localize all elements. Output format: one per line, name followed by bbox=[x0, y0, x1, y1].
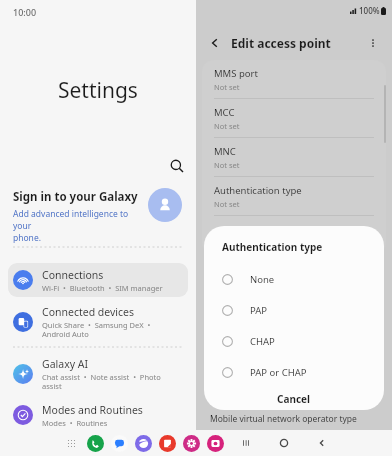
button[interactable]: Galaxy AI bbox=[8, 357, 188, 391]
button[interactable]: Phone bbox=[87, 435, 104, 452]
staticText: Add advanced intelligence to your phone. bbox=[13, 208, 142, 244]
button[interactable]: MCC bbox=[202, 99, 386, 137]
button[interactable]: Cancel bbox=[204, 388, 384, 410]
button[interactable]: Modes and Routines bbox=[8, 398, 188, 432]
staticText: Modes and Routines bbox=[42, 403, 143, 417]
staticText: 10:00 bbox=[13, 6, 37, 18]
staticText: None bbox=[250, 273, 275, 286]
button[interactable]: Sign in to your Galaxy bbox=[0, 185, 196, 244]
staticText: Mobile virtual network operator type bbox=[210, 413, 357, 425]
staticText: MNC bbox=[214, 145, 236, 158]
button[interactable]: None bbox=[204, 264, 384, 295]
staticText: Cancel bbox=[277, 392, 311, 406]
button[interactable]: Store bbox=[183, 435, 200, 452]
button[interactable]: Notes bbox=[159, 435, 176, 452]
staticText: MCC bbox=[214, 106, 235, 119]
staticText: Authentication type bbox=[222, 240, 323, 254]
button[interactable]: PAP or CHAP bbox=[204, 357, 384, 388]
button[interactable]: MMS port bbox=[202, 60, 386, 98]
button[interactable]: Connections bbox=[8, 263, 188, 297]
staticText: CHAP bbox=[250, 335, 275, 348]
button[interactable]: More options bbox=[364, 34, 382, 52]
staticText: Not set bbox=[214, 82, 240, 92]
staticText: 100% bbox=[359, 5, 380, 16]
staticText: Edit access point bbox=[231, 35, 331, 51]
button[interactable]: Messages bbox=[111, 435, 128, 452]
button[interactable]: Apps bbox=[62, 434, 80, 452]
staticText: Galaxy AI bbox=[42, 357, 89, 371]
button[interactable]: MNC bbox=[202, 138, 386, 176]
staticText: Wi-Fi • Bluetooth • SIM manager bbox=[42, 283, 163, 293]
button[interactable]: Camera bbox=[207, 435, 224, 452]
staticText: PAP bbox=[250, 304, 268, 317]
staticText: PAP or CHAP bbox=[250, 366, 307, 379]
staticText: Not set bbox=[214, 160, 240, 170]
staticText: MMS port bbox=[214, 67, 258, 80]
staticText: Authentication type bbox=[214, 184, 302, 197]
button[interactable]: Recents bbox=[238, 435, 254, 451]
button[interactable]: Authentication type bbox=[202, 177, 386, 215]
staticText: Chat assist • Note assist • Photo assist bbox=[42, 372, 182, 391]
staticText: Settings bbox=[58, 76, 138, 105]
button[interactable]: Back bbox=[314, 435, 330, 451]
staticText: Modes • Routines bbox=[42, 418, 108, 428]
button[interactable]: CHAP bbox=[204, 326, 384, 357]
staticText: Quick Share • Samsung DeX • Android Auto bbox=[42, 320, 182, 339]
button[interactable]: Search settings bbox=[166, 155, 188, 177]
staticText: Connected devices bbox=[42, 305, 135, 319]
button[interactable]: Back bbox=[206, 34, 224, 52]
button[interactable]: Home bbox=[276, 435, 292, 451]
staticText: Not set bbox=[214, 121, 240, 131]
button[interactable]: PAP bbox=[204, 295, 384, 326]
staticText: Not set bbox=[214, 199, 240, 209]
staticText: Sign in to your Galaxy bbox=[13, 189, 138, 205]
staticText: Connections bbox=[42, 268, 104, 282]
button[interactable]: Internet bbox=[135, 435, 152, 452]
button[interactable]: Connected devices bbox=[8, 305, 188, 339]
